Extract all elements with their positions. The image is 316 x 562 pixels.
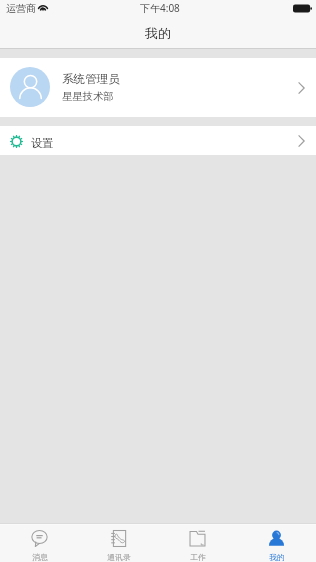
staticText: 设置 [31, 136, 54, 150]
button[interactable]: 系统管理员 [0, 58, 316, 117]
staticText: 星星技术部 [62, 90, 114, 103]
staticText: 系统管理员 [62, 72, 120, 87]
staticText: 我的 [145, 25, 171, 41]
other: Profile [268, 530, 285, 547]
button[interactable]: Work [158, 525, 237, 562]
button[interactable]: Profile [237, 525, 316, 562]
other: Messages [31, 530, 48, 547]
staticText: 运营商 [6, 2, 36, 15]
button[interactable]: Contacts [79, 525, 158, 562]
other: Work [189, 530, 206, 547]
button[interactable]: Messages [0, 525, 79, 562]
staticText: 通讯录 [107, 552, 131, 562]
other: Contacts [110, 530, 127, 547]
staticText: 我的 [269, 552, 285, 562]
staticText: 下午4:08 [140, 1, 180, 15]
staticText: 消息 [32, 552, 48, 562]
staticText: 工作 [190, 552, 206, 562]
button[interactable]: 设置 [0, 126, 316, 155]
